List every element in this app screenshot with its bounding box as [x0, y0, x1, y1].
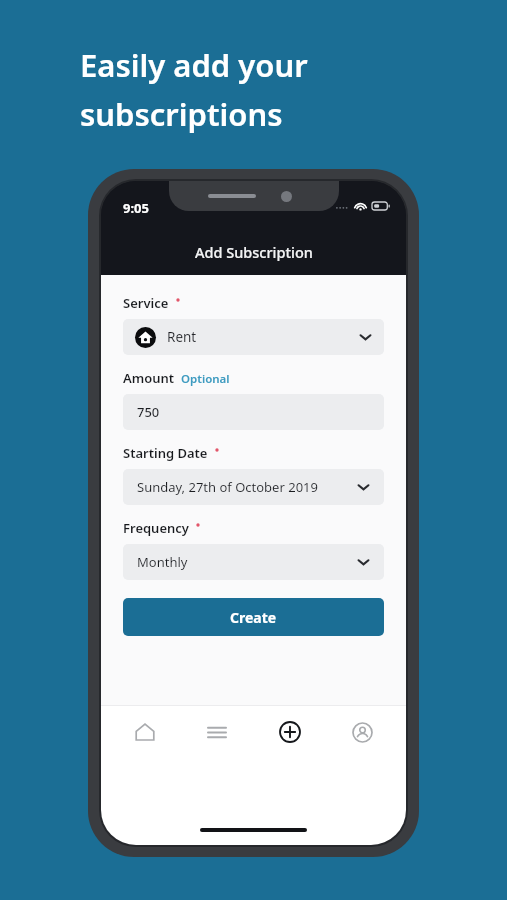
staticText: Sunday, 27th of October 2019: [137, 478, 318, 496]
staticText: Monthly: [137, 553, 188, 571]
button[interactable]: Home: [117, 706, 173, 758]
button[interactable]: 750: [123, 394, 384, 430]
button[interactable]: Sunday, 27th of October 2019: [123, 469, 384, 505]
staticText: Service: [123, 294, 169, 312]
staticText: 9:05: [123, 199, 149, 217]
button[interactable]: Subscriptions list: [189, 706, 245, 758]
button[interactable]: Add subscription: [262, 706, 318, 758]
staticText: 750: [137, 403, 160, 421]
staticText: Rent: [167, 328, 197, 346]
button[interactable]: Rent: [123, 319, 384, 355]
staticText: Starting Date: [123, 444, 208, 462]
staticText: Create: [230, 608, 277, 627]
button[interactable]: Create: [123, 598, 384, 636]
staticText: Optional: [181, 371, 230, 387]
staticText: Amount: [123, 369, 175, 387]
staticText: Add Subscription: [195, 242, 313, 262]
staticText: Easily add your: [80, 44, 308, 86]
staticText: subscriptions: [80, 93, 283, 135]
button[interactable]: Monthly: [123, 544, 384, 580]
button[interactable]: Profile: [334, 706, 390, 758]
staticText: Frequency: [123, 519, 189, 537]
